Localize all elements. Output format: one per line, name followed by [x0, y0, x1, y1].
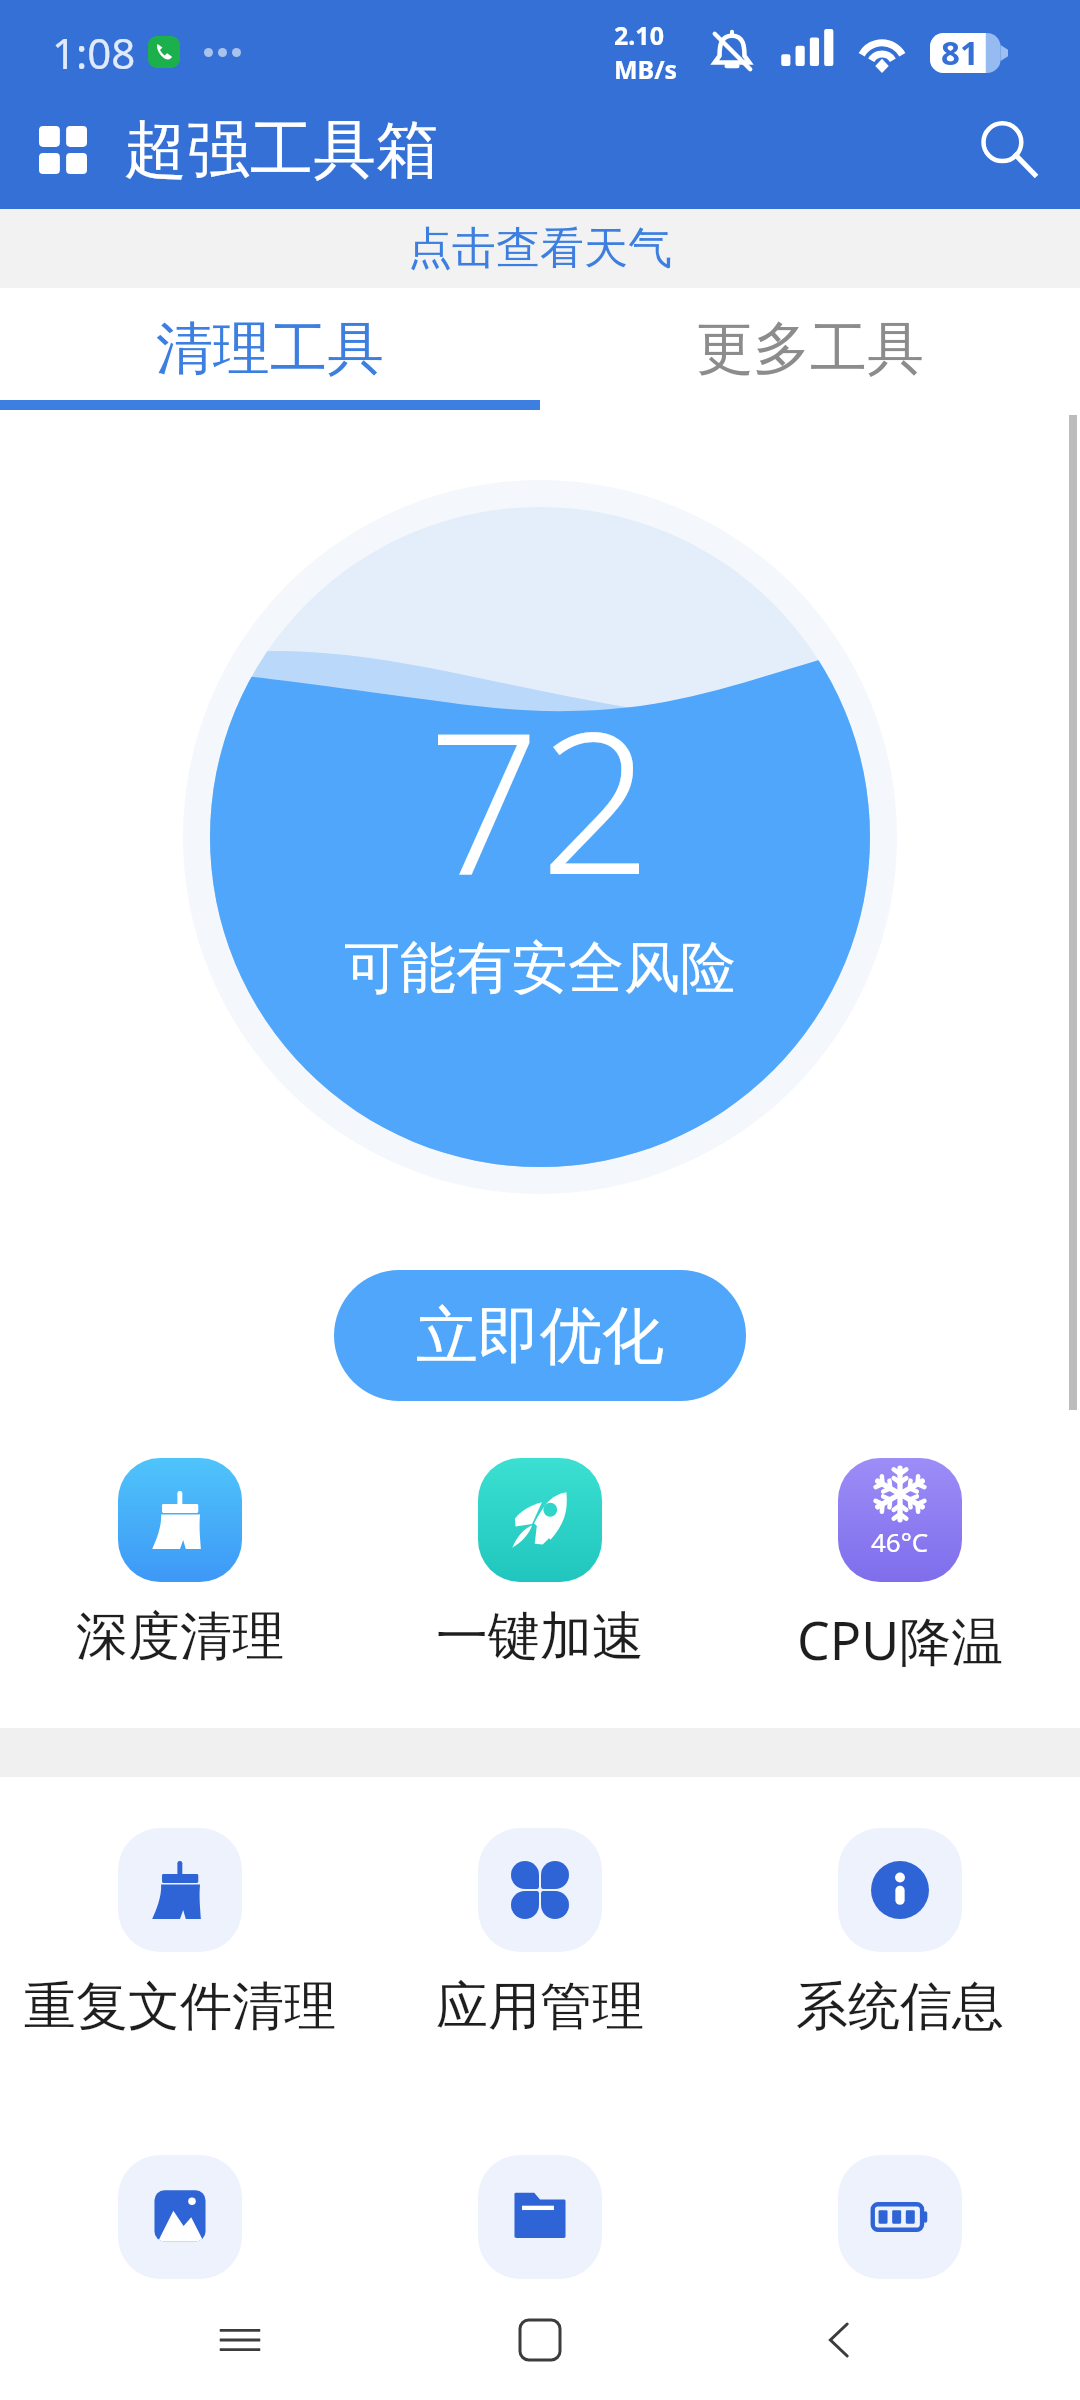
button[interactable]: Home [480, 2280, 600, 2400]
button[interactable]: 一键加速 [360, 1458, 720, 1670]
staticText: CPU降温 [797, 1604, 1004, 1675]
staticText: 可能有安全风险 [344, 933, 736, 1004]
staticText: 72 [428, 664, 652, 931]
button[interactable]: Back [780, 2280, 900, 2400]
button[interactable]: 重复文件清理 [0, 1828, 360, 2040]
button[interactable]: 更多工具 [540, 288, 1080, 410]
staticText: 应用管理 [436, 1974, 644, 2040]
staticText: 2.10 [614, 18, 664, 52]
button[interactable] [720, 2155, 1080, 2279]
button[interactable] [360, 2155, 720, 2279]
button[interactable]: 深度清理 [0, 1458, 360, 1670]
button[interactable]: Search [958, 107, 1044, 193]
staticText: 1:08 [52, 24, 136, 81]
staticText: 更多工具 [696, 313, 924, 385]
staticText: 重复文件清理 [24, 1974, 336, 2040]
button[interactable]: 立即优化 [334, 1270, 746, 1401]
staticText: 81 [941, 30, 979, 75]
button[interactable]: 46°C [720, 1458, 1080, 1675]
button[interactable] [0, 2155, 360, 2279]
staticText: 超强工具箱 [124, 110, 439, 189]
button[interactable]: Recents [180, 2280, 300, 2400]
staticText: MB/s [614, 52, 678, 86]
button[interactable]: Apps menu [26, 113, 100, 187]
staticText: 系统信息 [796, 1974, 1004, 2040]
staticText: 46°C [871, 1524, 929, 1559]
staticText: 深度清理 [76, 1604, 284, 1670]
staticText: 清理工具 [156, 313, 384, 385]
staticText: 立即优化 [416, 1297, 664, 1375]
staticText: 点击查看天气 [408, 221, 672, 276]
button[interactable]: 清理工具 [0, 288, 540, 410]
button[interactable]: 系统信息 [720, 1828, 1080, 2040]
staticText: 一键加速 [436, 1604, 644, 1670]
button[interactable]: 应用管理 [360, 1828, 720, 2040]
button[interactable]: 点击查看天气 [0, 209, 1080, 288]
